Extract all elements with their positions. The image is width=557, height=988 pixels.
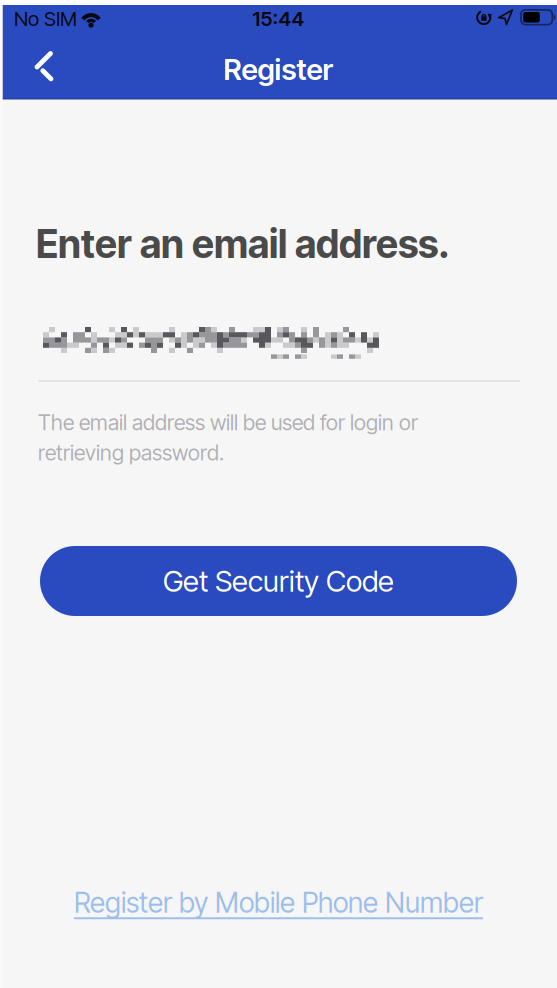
- button[interactable]: Get Security Code: [40, 546, 517, 616]
- staticText: No SIM: [14, 7, 77, 31]
- staticText: Get Security Code: [163, 564, 394, 598]
- staticText: Register by Mobile Phone Number: [74, 886, 483, 919]
- staticText: The email address will be used for login…: [38, 410, 418, 465]
- staticText: 15:44: [252, 7, 304, 31]
- button[interactable]: Back: [25, 44, 64, 88]
- staticText: Enter an email address.: [36, 221, 450, 267]
- button[interactable]: Register by Mobile Phone Number: [74, 886, 483, 919]
- staticText: Register: [223, 52, 333, 87]
